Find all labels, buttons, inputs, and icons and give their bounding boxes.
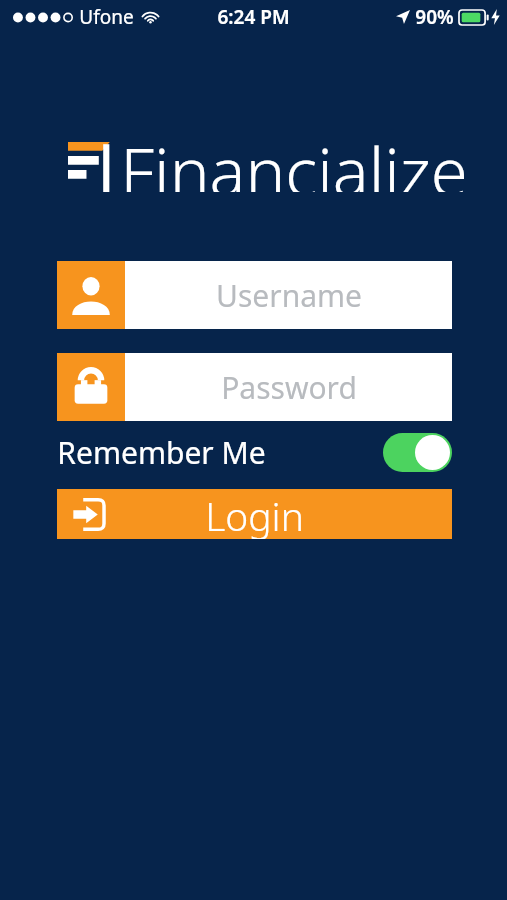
staticText: Financialize <box>120 124 468 192</box>
button[interactable]: Username <box>57 261 452 329</box>
staticText: Ufone <box>79 4 134 30</box>
staticText: Login <box>205 489 304 539</box>
staticText: Username <box>216 275 362 316</box>
button[interactable]: Remember Me toggle <box>383 433 452 472</box>
button[interactable]: Login <box>57 489 452 539</box>
staticText: 6:24 PM <box>217 4 290 30</box>
staticText: 90% <box>415 4 454 30</box>
button[interactable]: Password <box>57 353 452 421</box>
staticText: Remember Me <box>57 432 266 473</box>
button[interactable]: Remember Me <box>57 431 452 473</box>
staticText: Password <box>221 367 357 408</box>
